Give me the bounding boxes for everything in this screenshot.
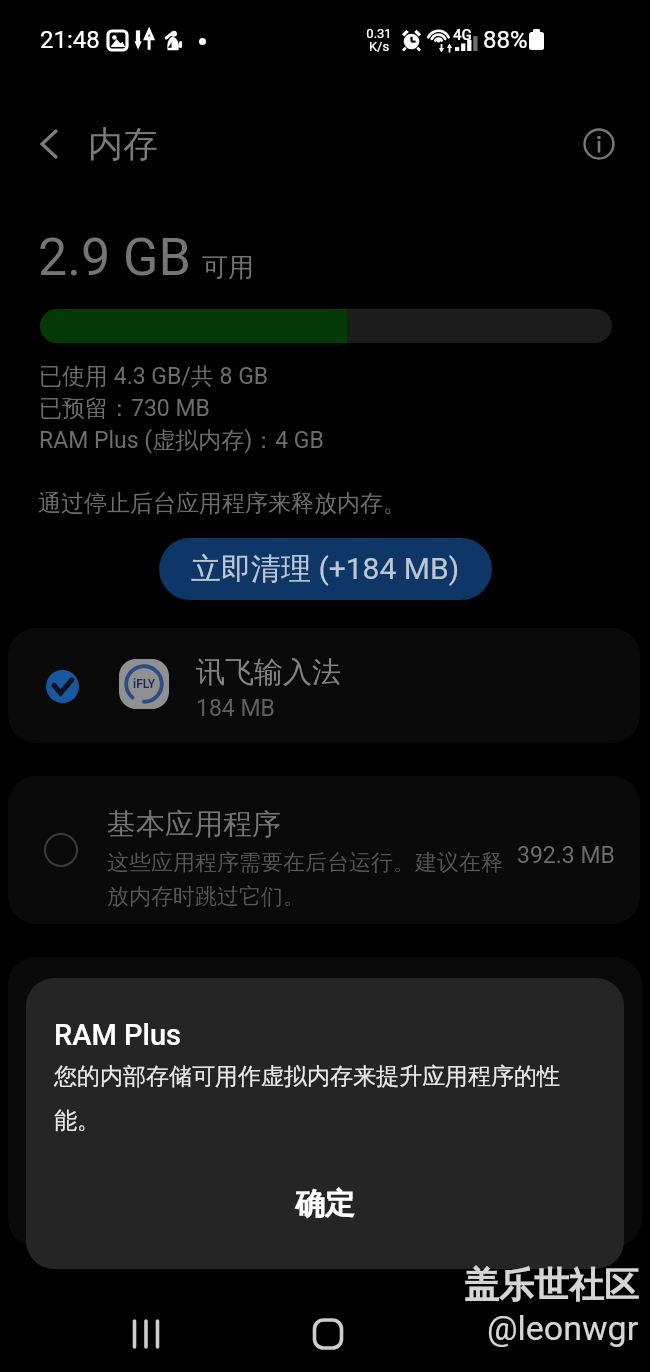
staticText: 184 MB — [196, 695, 275, 722]
staticText: 您的内部存储可用作虚拟内存来提升应用程序的性能。 — [54, 1062, 575, 1135]
button[interactable]: 基本应用程序 — [8, 776, 640, 924]
button[interactable]: Recent apps — [110, 1298, 182, 1370]
staticText: 88% — [483, 26, 528, 54]
button[interactable]: 立即清理 (+184 MB) — [159, 538, 492, 600]
staticText: 基本应用程序 — [107, 806, 281, 843]
button[interactable]: Home — [292, 1298, 364, 1370]
staticText: RAM Plus — [54, 1018, 182, 1052]
staticText: 已使用 4.3 GB/共 8 GB — [39, 362, 269, 391]
staticText: 可用 — [202, 251, 254, 284]
staticText: iFLY — [133, 677, 156, 691]
staticText: 已预留：730 MB — [39, 394, 210, 423]
staticText: 盖乐世社区 — [464, 1263, 639, 1307]
staticText: 确定 — [295, 1185, 355, 1223]
staticText: 4G — [453, 26, 472, 44]
staticText: 立即清理 (+184 MB) — [191, 550, 460, 588]
staticText: @leonwgr — [487, 1308, 639, 1348]
button[interactable]: iFLY — [8, 628, 640, 743]
staticText: 通过停止后台应用程序来释放内存。 — [38, 489, 406, 518]
staticText: 放内存时跳过它们。 — [107, 883, 305, 911]
button[interactable]: Back — [26, 121, 72, 167]
staticText: 392.3 MB — [517, 842, 615, 869]
button[interactable]: Information — [576, 121, 622, 167]
staticText: 0.31 K/s — [366, 26, 392, 54]
staticText: 内存 — [88, 122, 158, 166]
staticText: 这些应用程序需要在后台运行。建议在释 — [107, 849, 503, 877]
button[interactable]: 确定 — [26, 1164, 624, 1244]
staticText: 讯飞输入法 — [196, 654, 341, 691]
staticText: 21:48 — [40, 26, 100, 54]
staticText: 2.9 GB — [38, 227, 191, 288]
staticText: RAM Plus (虚拟内存)：4 GB — [39, 426, 324, 455]
